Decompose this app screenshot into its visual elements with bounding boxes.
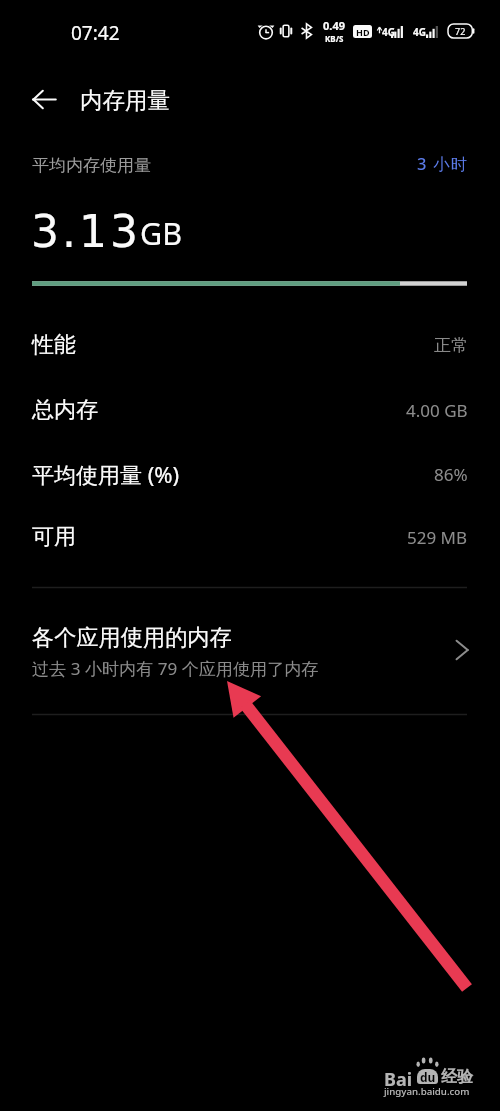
staticText: 内存用量 [80, 86, 170, 114]
button[interactable]: Back [25, 80, 63, 118]
staticText: 可用 [32, 523, 76, 551]
staticText: 各个应用使用的内存 [32, 624, 232, 652]
staticText: HD [356, 26, 370, 38]
staticText: 3.13 [31, 206, 141, 257]
staticText: 07:42 [71, 20, 120, 46]
button[interactable]: 平均使用量 (%) [0, 443, 500, 505]
staticText: 平均使用量 (%) [32, 459, 180, 489]
staticText: KB/S [325, 33, 344, 44]
staticText: Bai [384, 1067, 413, 1092]
staticText: 4G [382, 25, 395, 39]
staticText: jingyan.baidu.com [384, 1085, 470, 1098]
staticText: 0.49 [323, 18, 345, 33]
staticText: du [420, 1069, 436, 1084]
staticText: 经验 [441, 1067, 473, 1087]
staticText: 4.00 GB [406, 399, 468, 422]
staticText: 性能 [32, 331, 76, 359]
staticText: 平均内存使用量 [32, 155, 151, 176]
staticText: 正常 [434, 335, 468, 356]
staticText: 4G [413, 25, 426, 39]
staticText: 529 MB [407, 526, 468, 549]
staticText: 86% [434, 463, 468, 486]
staticText: 72 [455, 25, 466, 37]
button[interactable]: 总内存 [0, 379, 500, 441]
button[interactable]: 可用 [0, 506, 500, 568]
button[interactable]: 各个应用使用的内存 [0, 600, 500, 710]
staticText: GB [140, 212, 183, 254]
button[interactable]: 性能 [0, 314, 500, 376]
staticText: 过去 3 小时内有 79 个应用使用了内存 [32, 657, 319, 680]
staticText: 总内存 [32, 396, 98, 424]
button[interactable]: 3 小时 [408, 146, 478, 181]
staticText: 3 小时 [417, 152, 469, 175]
